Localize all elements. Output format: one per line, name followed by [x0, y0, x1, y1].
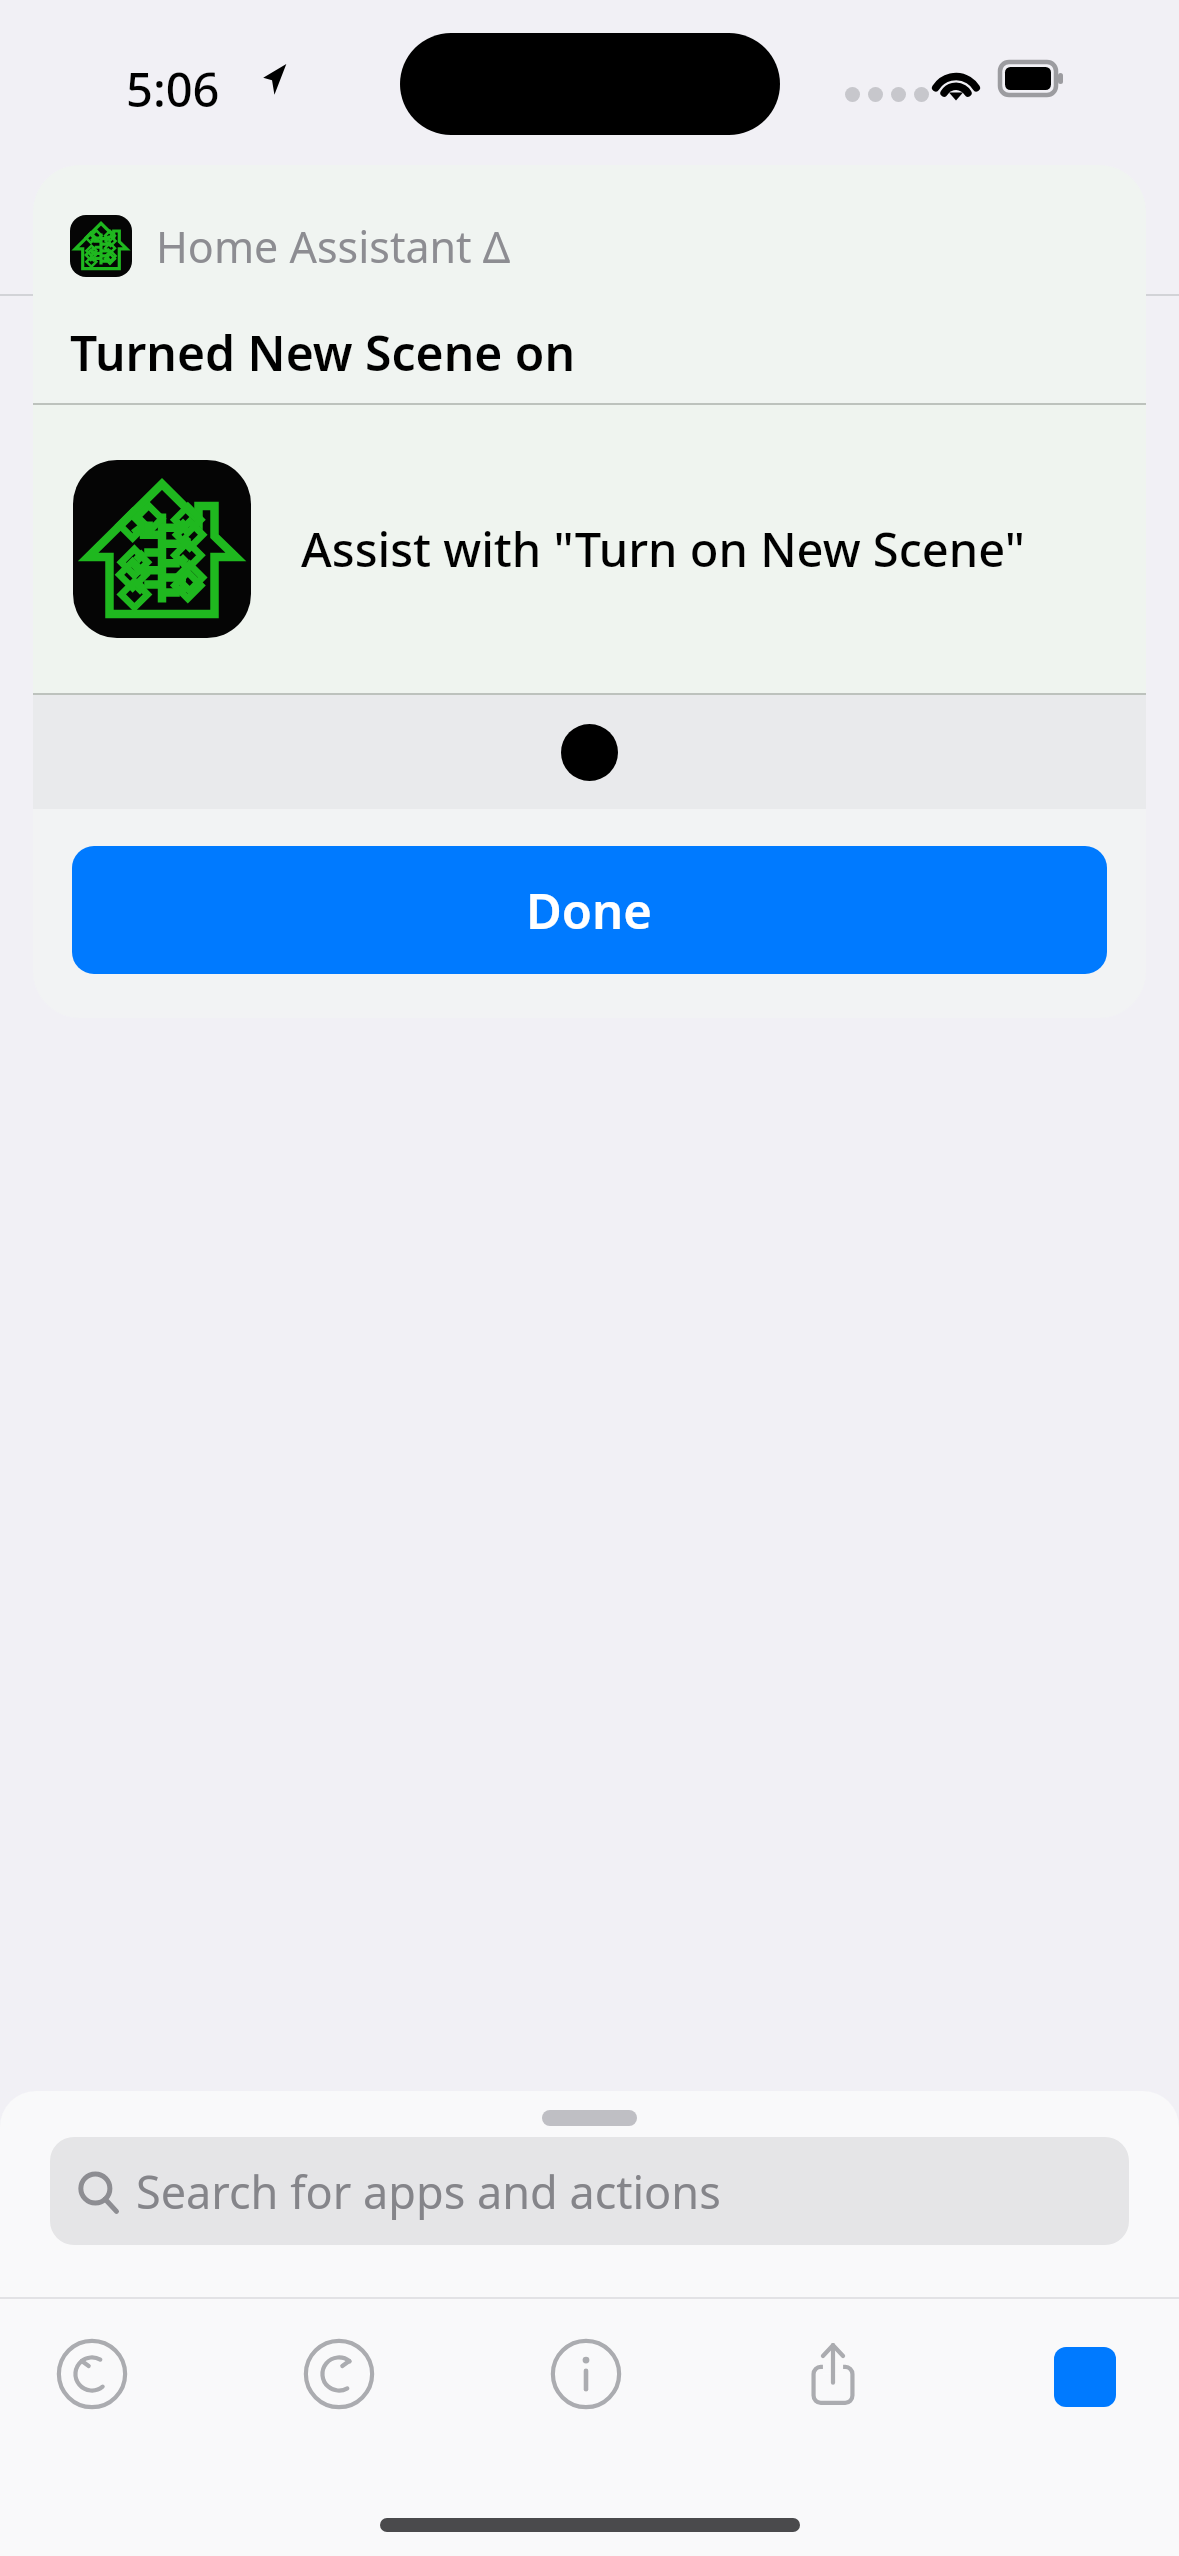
- button[interactable]: Info: [546, 2334, 626, 2414]
- button[interactable]: Redo: [299, 2334, 379, 2414]
- staticText: Search for apps and actions: [136, 2161, 721, 2222]
- staticText: Turned New Scene on: [70, 320, 576, 385]
- staticText: Done: [526, 877, 653, 944]
- button[interactable]: Assist with "Turn on New Scene": [33, 405, 1146, 693]
- button[interactable]: Play: [1054, 2347, 1116, 2407]
- button[interactable]: Search for apps and actions: [50, 2137, 1129, 2245]
- button[interactable]: Done: [72, 846, 1107, 974]
- staticText: Assist with "Turn on New Scene": [301, 517, 1025, 581]
- staticText: 5:06: [126, 57, 220, 121]
- button[interactable]: Share: [793, 2334, 873, 2414]
- staticText: Home Assistant Δ: [156, 217, 511, 276]
- button[interactable]: Undo: [52, 2334, 132, 2414]
